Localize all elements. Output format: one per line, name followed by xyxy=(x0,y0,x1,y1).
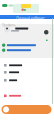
staticText: Личный кабинет xyxy=(16,16,45,20)
staticText: Профиль xyxy=(2,23,16,27)
